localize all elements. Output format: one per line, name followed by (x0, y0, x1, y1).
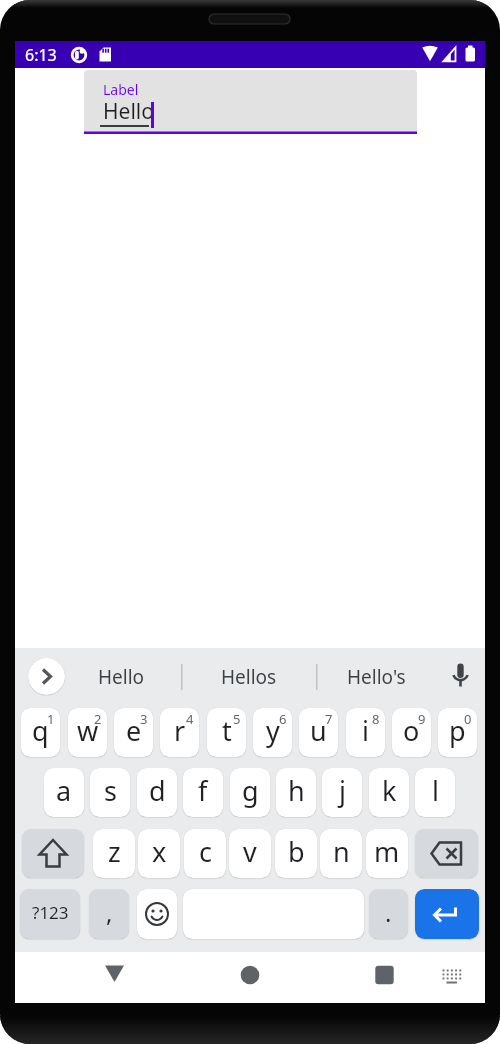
staticText: o (403, 712, 420, 749)
button[interactable]: n (320, 829, 362, 878)
button[interactable]: r (160, 708, 199, 757)
button[interactable]: e (114, 708, 153, 757)
staticText: Hello (98, 664, 145, 690)
staticText: 5 (233, 710, 241, 728)
staticText: u (310, 712, 327, 749)
button[interactable]: , (89, 889, 129, 939)
button[interactable]: s (90, 768, 130, 817)
staticText: q (32, 712, 49, 749)
button[interactable]: v (229, 829, 271, 878)
staticText: 4 (186, 710, 194, 728)
button[interactable] (368, 959, 400, 991)
button[interactable] (415, 889, 479, 939)
staticText: 6:13 (25, 44, 57, 66)
staticText: Hello (103, 97, 154, 126)
staticText: s (104, 772, 117, 809)
button[interactable]: Hello (61, 659, 181, 695)
staticText: a (56, 772, 72, 809)
staticText: 9 (418, 710, 426, 728)
button[interactable]: Hellos (186, 659, 311, 695)
staticText: r (174, 712, 186, 749)
button[interactable] (28, 658, 65, 695)
button[interactable]: c (184, 829, 226, 878)
staticText: ?123 (32, 901, 69, 924)
staticText: l (432, 772, 439, 809)
button[interactable] (99, 960, 131, 992)
staticText: w (77, 712, 99, 749)
button[interactable]: k (369, 768, 409, 817)
staticText: c (199, 833, 212, 870)
button[interactable]: t (207, 708, 246, 757)
staticText: , (106, 896, 113, 929)
staticText: t (222, 712, 232, 749)
staticText: k (382, 772, 397, 809)
staticText: m (374, 833, 400, 870)
button[interactable] (137, 889, 177, 939)
button[interactable]: a (44, 768, 84, 817)
staticText: i (362, 712, 369, 749)
staticText: 8 (372, 710, 380, 728)
button[interactable]: j (322, 768, 362, 817)
staticText: d (149, 772, 166, 809)
staticText: p (449, 712, 466, 749)
button[interactable] (22, 829, 84, 878)
button[interactable]: l (415, 768, 455, 817)
staticText: 7 (325, 710, 333, 728)
staticText: 6 (279, 710, 287, 728)
staticText: z (108, 833, 121, 870)
button[interactable]: g (230, 768, 270, 817)
button[interactable]: z (93, 829, 135, 878)
staticText: 2 (94, 710, 102, 728)
staticText: 1 (47, 710, 55, 728)
button[interactable]: p (438, 708, 477, 757)
staticText: 0 (464, 710, 472, 728)
staticText: e (126, 712, 142, 749)
button[interactable]: f (183, 768, 223, 817)
button[interactable]: m (366, 829, 408, 878)
staticText: n (333, 833, 350, 870)
button[interactable]: . (369, 889, 408, 939)
button[interactable]: w (68, 708, 107, 757)
button[interactable]: b (275, 829, 317, 878)
button[interactable]: Label (84, 70, 417, 134)
staticText: 3 (140, 710, 148, 728)
button[interactable]: d (137, 768, 177, 817)
staticText: y (266, 712, 280, 749)
button[interactable]: q (21, 708, 60, 757)
button[interactable] (415, 829, 478, 878)
staticText: . (385, 896, 392, 929)
staticText: b (288, 833, 305, 870)
staticText: Label (103, 80, 139, 99)
button[interactable]: x (138, 829, 180, 878)
staticText: h (288, 772, 305, 809)
button[interactable] (440, 962, 470, 992)
button[interactable]: y (253, 708, 292, 757)
staticText: f (198, 772, 208, 809)
button[interactable]: o (392, 708, 431, 757)
button[interactable]: Hello's (320, 659, 432, 695)
button[interactable] (234, 959, 266, 991)
button[interactable] (444, 658, 477, 694)
button[interactable]: u (299, 708, 338, 757)
button[interactable]: i (346, 708, 385, 757)
button[interactable]: h (276, 768, 316, 817)
staticText: v (243, 833, 257, 870)
staticText: j (339, 772, 346, 809)
staticText: Hellos (221, 664, 277, 690)
staticText: x (152, 833, 167, 870)
staticText: Hello's (347, 664, 406, 690)
button[interactable]: ?123 (20, 889, 80, 939)
staticText: g (242, 772, 259, 809)
